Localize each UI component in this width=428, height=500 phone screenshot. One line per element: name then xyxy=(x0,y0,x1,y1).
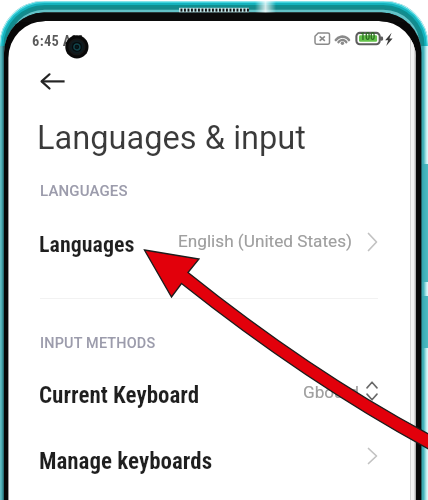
staticText: 100 xyxy=(360,30,376,42)
staticText: Manage keyboards xyxy=(39,448,213,475)
button[interactable]: Current Keyboard xyxy=(0,368,428,422)
staticText: LANGUAGES xyxy=(40,182,128,200)
staticText: Languages & input xyxy=(37,119,306,157)
staticText: Gboard xyxy=(303,382,359,402)
button[interactable]: Back xyxy=(40,72,66,92)
staticText: 6:45 AM xyxy=(32,33,84,50)
staticText: English (United States) xyxy=(178,231,353,251)
staticText: Languages xyxy=(39,232,135,258)
button[interactable]: Languages xyxy=(0,214,428,270)
button[interactable]: Manage keyboards xyxy=(0,435,428,489)
staticText: INPUT METHODS xyxy=(40,335,156,352)
staticText: Current Keyboard xyxy=(39,382,200,409)
